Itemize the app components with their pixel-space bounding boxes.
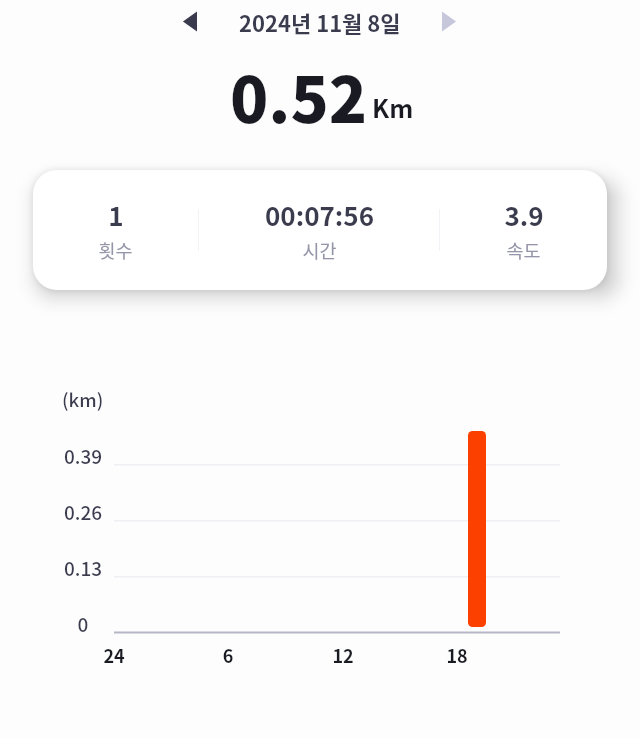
button[interactable]: Previous day	[171, 6, 209, 36]
staticText: 24	[84, 642, 144, 668]
staticText: 0.13	[43, 554, 123, 582]
staticText: Km	[372, 89, 414, 125]
button[interactable]: 00:07:56	[199, 170, 439, 290]
staticText: 00:07:56	[265, 196, 374, 234]
staticText: 횟수	[98, 237, 133, 264]
button[interactable]: 1	[33, 170, 198, 290]
staticText: (km)	[62, 386, 104, 413]
staticText: 시간	[302, 237, 337, 264]
button[interactable]: Next day	[430, 6, 468, 36]
staticText: 12	[313, 642, 373, 668]
staticText: 18	[427, 642, 487, 668]
staticText: 0.39	[43, 442, 123, 470]
staticText: 1	[108, 196, 124, 234]
button[interactable]: 3.9	[440, 170, 607, 290]
staticText: 0	[43, 610, 123, 638]
staticText: 3.9	[504, 196, 544, 234]
staticText: 2024년 11월 8일	[239, 6, 401, 38]
staticText: 속도	[506, 237, 541, 264]
staticText: 0.26	[43, 498, 123, 526]
staticText: 0.52	[230, 50, 368, 141]
staticText: 6	[198, 642, 258, 668]
